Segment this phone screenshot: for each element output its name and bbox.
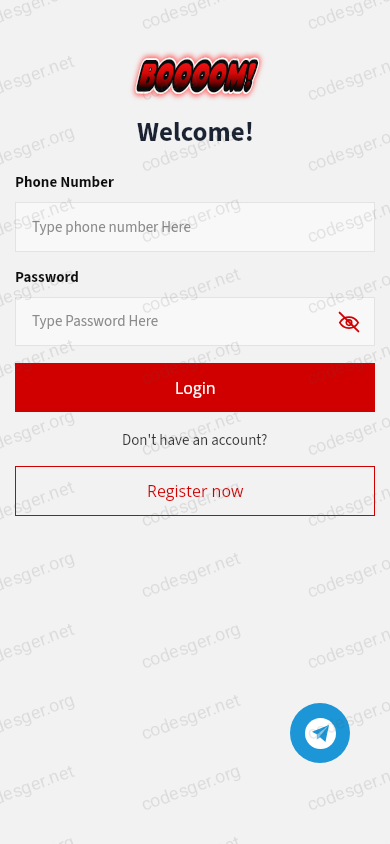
button[interactable]: Contact us on Telegram [290,703,350,763]
button[interactable]: Type phone number Here [15,202,375,252]
staticText: Password [15,267,79,288]
button[interactable]: Login [15,363,375,412]
button[interactable]: Register now [15,466,375,516]
button[interactable]: Show password [332,305,366,339]
staticText: Type phone number Here [32,217,192,238]
staticText: Register now [147,480,244,502]
staticText: Phone Number [15,172,114,193]
staticText: Don't have an account? [122,430,268,451]
staticText: Welcome! [137,113,254,151]
staticText: Login [175,377,216,399]
staticText: Type Password Here [32,311,159,332]
button[interactable]: Type Password Here [15,297,375,346]
